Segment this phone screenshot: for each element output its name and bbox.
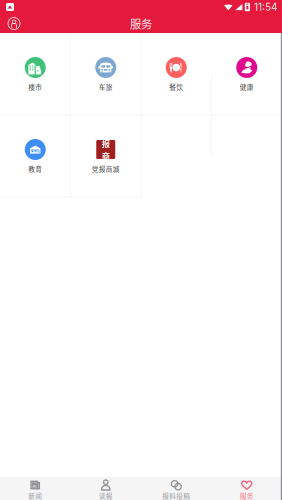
button[interactable]: 报料投稿 [141,477,211,500]
staticText: 健康 [240,82,254,92]
button[interactable]: 车旅 [70,33,141,115]
button[interactable]: 楼市 [0,33,70,115]
staticText: 报料投稿 [162,491,190,500]
staticText: 党报商城 [92,164,120,174]
staticText: 读报 [99,491,113,500]
staticText: 服务 [130,15,152,32]
staticText: 新闻 [28,491,42,500]
button[interactable]: Profile [3,14,25,33]
staticText: 楼市 [28,82,42,92]
staticText: 11:54 [254,1,277,13]
button[interactable]: 党报 [70,115,141,197]
button[interactable]: 服务 [211,477,282,500]
staticText: 餐饮 [169,82,183,92]
staticText: 商城 [102,149,110,173]
button[interactable]: 新闻 [0,477,70,500]
staticText: 教育 [28,164,42,174]
button[interactable]: 餐饮 [141,33,211,115]
staticText: 车旅 [99,82,113,92]
button[interactable]: 健康 [211,33,282,115]
button[interactable]: 读报 [70,477,141,500]
button[interactable]: 教育 [0,115,70,197]
staticText: 服务 [240,491,254,500]
staticText: 党报 [102,126,110,149]
